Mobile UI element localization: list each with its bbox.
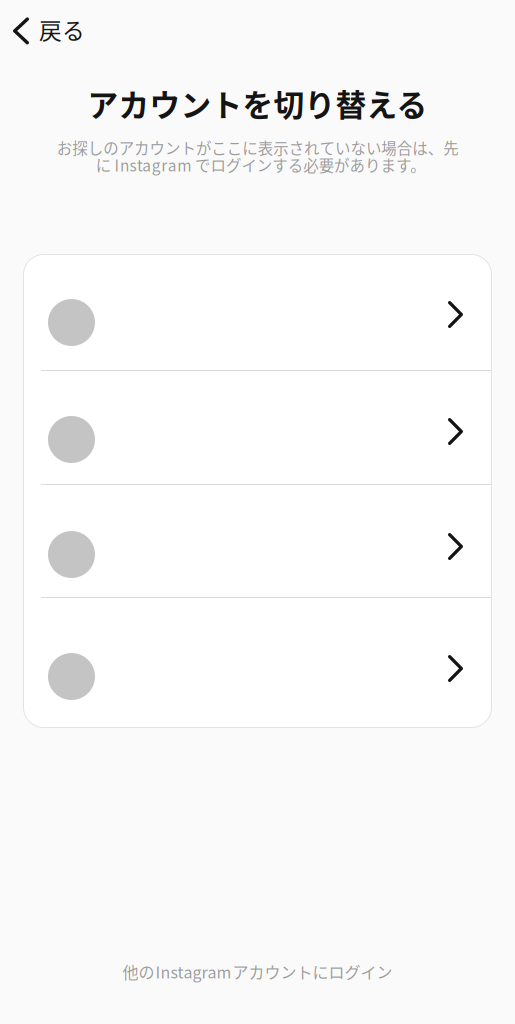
staticText: に Instagram でログインする必要があります。 [96, 154, 425, 176]
button[interactable]: 戻る [0, 4, 101, 55]
staticText: 戻る [39, 13, 85, 46]
button[interactable]: Switch to account [23, 485, 492, 597]
staticText: 他の Instagram アカウントにログイン [122, 960, 392, 983]
button[interactable]: 他の Instagram アカウントにログイン [98, 949, 416, 994]
staticText: アカウントを切り替える [87, 81, 427, 125]
button[interactable]: Switch to account [23, 254, 492, 370]
button[interactable]: Switch to account [23, 598, 492, 728]
staticText: お探しのアカウントがここに表示されていない場合は、先 [57, 136, 458, 159]
button[interactable]: Switch to account [23, 371, 492, 484]
